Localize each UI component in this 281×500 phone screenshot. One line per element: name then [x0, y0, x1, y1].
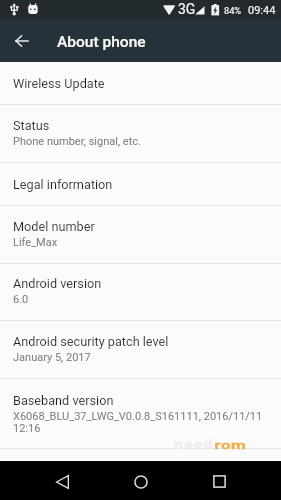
- staticText: need: [174, 438, 215, 451]
- button[interactable]: Recent apps: [197, 461, 241, 500]
- button[interactable]: Model number: [0, 206, 281, 263]
- staticText: Life_Max: [13, 236, 58, 249]
- staticText: Model number: [13, 219, 95, 234]
- button[interactable]: Back: [41, 461, 85, 500]
- staticText: rom: [215, 438, 246, 451]
- staticText: Android security patch level: [13, 334, 169, 349]
- button[interactable]: Android version: [0, 264, 281, 320]
- button[interactable]: Wireless Update: [0, 62, 281, 104]
- staticText: Phone number, signal, etc.: [13, 135, 141, 148]
- button[interactable]: Android security patch level: [0, 321, 281, 378]
- staticText: Status: [13, 118, 50, 133]
- staticText: Wireless Update: [13, 76, 105, 91]
- staticText: Android version: [13, 276, 102, 291]
- button[interactable]: Legal information: [0, 163, 281, 205]
- button[interactable]: Status: [0, 105, 281, 162]
- staticText: Baseband version: [13, 393, 114, 408]
- staticText: 84%: [224, 5, 242, 16]
- button[interactable]: Navigate up: [0, 19, 44, 62]
- staticText: 09:44: [248, 4, 276, 17]
- staticText: X6068_BLU_37_LWG_V0.0.8_S161111, 2016/11…: [13, 410, 263, 435]
- staticText: About phone: [57, 33, 146, 51]
- button[interactable]: Home: [119, 461, 163, 500]
- staticText: 3G: [178, 1, 196, 17]
- staticText: 6.0: [13, 293, 29, 306]
- button[interactable]: Baseband version: [0, 379, 281, 448]
- staticText: January 5, 2017: [13, 351, 91, 364]
- staticText: Legal information: [13, 177, 113, 192]
